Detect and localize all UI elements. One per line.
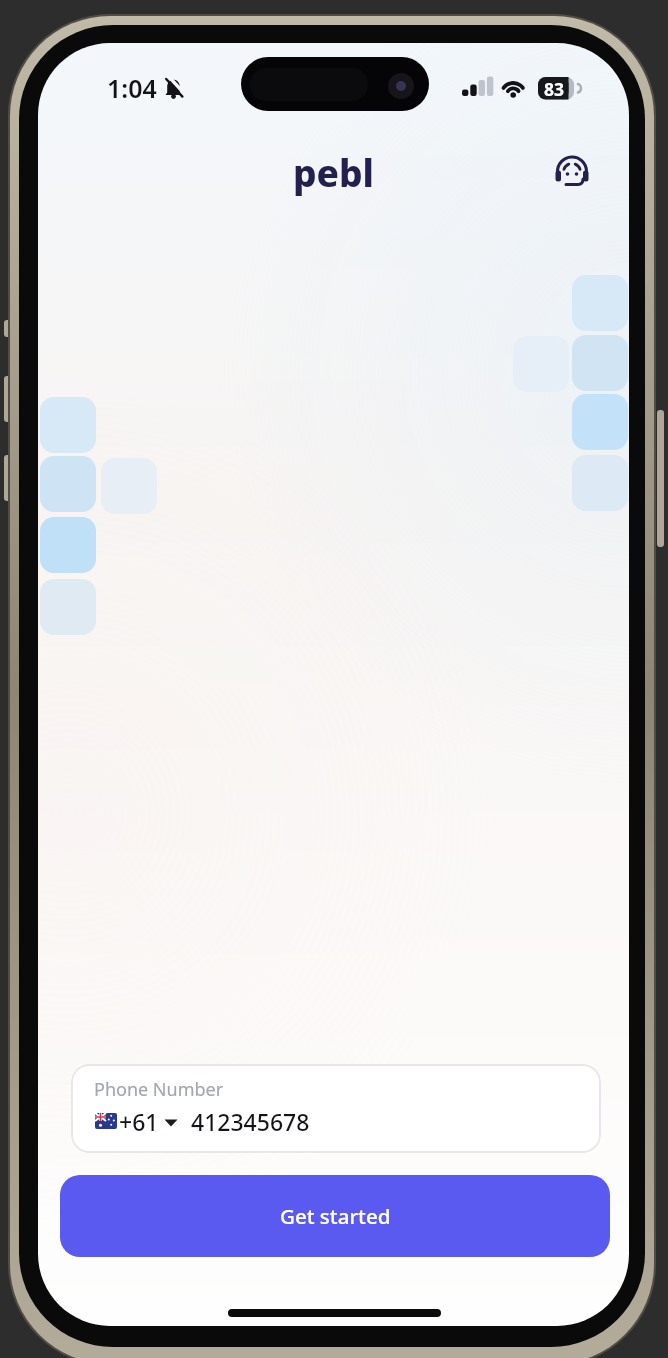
button[interactable]: Phone Number xyxy=(71,1064,601,1153)
staticText: Phone Number xyxy=(94,1077,224,1102)
staticText: 1:04 xyxy=(107,71,157,105)
staticText: 83 xyxy=(544,77,565,101)
button[interactable]: Get started xyxy=(60,1175,610,1257)
staticText: pebl xyxy=(293,147,375,197)
staticText: +61 xyxy=(119,1106,159,1137)
button[interactable] xyxy=(554,154,590,190)
staticText: 412345678 xyxy=(191,1106,310,1137)
staticText: Get started xyxy=(280,1202,391,1230)
